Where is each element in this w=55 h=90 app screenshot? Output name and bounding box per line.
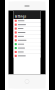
button[interactable] xyxy=(13,50,40,54)
button[interactable] xyxy=(13,38,40,42)
button[interactable] xyxy=(13,31,40,34)
button[interactable] xyxy=(13,42,40,46)
button[interactable] xyxy=(13,54,40,58)
button[interactable] xyxy=(13,23,40,26)
button[interactable] xyxy=(13,35,40,38)
button[interactable] xyxy=(13,19,40,22)
button[interactable] xyxy=(13,27,40,30)
button[interactable] xyxy=(13,46,40,50)
staticText: Settings xyxy=(15,15,26,18)
